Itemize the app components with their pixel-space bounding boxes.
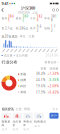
- staticText: 2.1亿: [5, 26, 13, 30]
- staticText: 02-14: [34, 124, 39, 128]
- staticText: 量: [1, 27, 4, 30]
- button[interactable]: 机构观点: [34, 113, 46, 128]
- button[interactable]: 查看全部 ›: [44, 60, 58, 64]
- staticText: 五日均量: [16, 54, 28, 57]
- staticText: 查看全部 ›: [44, 60, 58, 64]
- staticText: 消费: [20, 78, 26, 82]
- button[interactable]: 券商点评: [23, 113, 33, 131]
- staticText: 更多: [52, 107, 58, 111]
- staticText: 指数新高: [1, 120, 10, 127]
- staticText: 金融: [20, 72, 26, 76]
- button[interactable]: 开户: [49, 113, 58, 119]
- staticText: 02-14: [1, 127, 6, 131]
- staticText: 000300 上证: [18, 11, 38, 15]
- staticText: 成交量: [4, 54, 13, 57]
- staticText: 券商点评: [23, 120, 32, 127]
- staticText: 研报: [24, 107, 30, 111]
- staticText: 最高: [1, 16, 7, 20]
- staticText: 3802: [22, 14, 28, 22]
- staticText: 昨收: [44, 16, 50, 20]
- button[interactable]: 指数新高: [1, 113, 11, 131]
- staticText: 3818: [51, 14, 57, 22]
- staticText: 286亿: [19, 26, 28, 30]
- staticText: 02-14: [12, 127, 17, 131]
- staticText: 额: [16, 27, 19, 30]
- button[interactable]: More options: [51, 8, 60, 12]
- staticText: 单位：亿股: [20, 35, 35, 38]
- staticText: +2.08%: [47, 84, 58, 88]
- staticText: 近20日成交: [1, 34, 17, 38]
- staticText: 最低: [16, 16, 22, 20]
- staticText: 其他: [20, 90, 26, 94]
- staticText: 02-14: [23, 127, 28, 131]
- staticText: 17.9%: [36, 90, 45, 94]
- staticText: 9:41: [1, 1, 8, 6]
- staticText: +0.42%: [47, 90, 58, 94]
- staticText: 行业分布: [1, 60, 17, 65]
- button[interactable]: 北向资金: [12, 113, 22, 131]
- staticText: 今开: [30, 16, 36, 20]
- staticText: 振幅: [44, 27, 50, 30]
- staticText: 权重: [40, 67, 46, 70]
- staticText: 开户: [51, 114, 57, 117]
- staticText: 3845: [8, 14, 14, 22]
- staticText: 19.6%: [36, 84, 45, 88]
- staticText: 涨跌幅: [49, 67, 58, 70]
- staticText: 换手: [30, 27, 36, 30]
- staticText: 3820: [37, 14, 43, 22]
- staticText: +1.24%: [47, 72, 58, 76]
- staticText: 2024-06: [45, 54, 58, 57]
- staticText: 机构观点: [34, 120, 46, 123]
- staticText: 沪深300: [21, 5, 35, 11]
- staticText: 相关资讯: [1, 107, 13, 111]
- staticText: 24.1%: [36, 78, 45, 82]
- staticText: 北向资金: [12, 120, 21, 127]
- staticText: 公告: [16, 107, 22, 111]
- staticText: -0.36%: [48, 78, 58, 82]
- staticText: 38.4%: [36, 72, 45, 76]
- staticText: 1.12: [51, 25, 56, 32]
- staticText: 科技: [20, 84, 26, 88]
- staticText: 0.62: [37, 25, 42, 32]
- button[interactable]: Back: [0, 7, 5, 13]
